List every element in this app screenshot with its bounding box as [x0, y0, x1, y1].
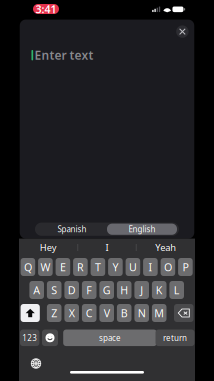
button[interactable]: V	[99, 304, 114, 322]
button[interactable]: I	[78, 239, 136, 255]
button[interactable]: X	[64, 304, 79, 322]
button[interactable]: return	[155, 330, 194, 346]
staticText: X	[69, 306, 75, 320]
button[interactable]: K	[152, 281, 166, 299]
button[interactable]: T	[91, 258, 105, 276]
button[interactable]: M	[152, 304, 166, 322]
button[interactable]: G	[99, 281, 114, 299]
button[interactable]: English	[107, 224, 177, 235]
staticText: H	[120, 283, 128, 297]
button[interactable]: Spanish	[37, 224, 107, 235]
staticText: D	[68, 283, 76, 297]
button[interactable]: H	[117, 281, 131, 299]
button[interactable]: Q	[21, 258, 35, 276]
staticText: Enter text	[34, 47, 93, 63]
staticText: Yeah	[155, 241, 176, 254]
staticText: G	[103, 283, 111, 297]
button[interactable]: space	[63, 330, 157, 346]
staticText: 3:41	[35, 2, 56, 16]
button[interactable]: 123	[20, 330, 39, 346]
staticText: Hey	[40, 241, 57, 254]
button[interactable]: Delete	[174, 304, 194, 322]
staticText: C	[86, 306, 93, 320]
button[interactable]: Shift	[21, 304, 40, 322]
staticText: J	[140, 283, 143, 297]
button[interactable]: R	[73, 258, 88, 276]
staticText: A	[33, 283, 40, 297]
button[interactable]: Emoji	[42, 330, 58, 346]
staticText: K	[156, 283, 163, 297]
staticText: T	[95, 260, 101, 274]
button[interactable]: I	[143, 258, 158, 276]
staticText: M	[154, 306, 164, 320]
staticText: return	[163, 332, 187, 343]
staticText: Spanish	[57, 224, 86, 234]
staticText: B	[121, 306, 128, 320]
staticText: E	[60, 260, 66, 274]
button[interactable]: Hey	[19, 239, 77, 255]
button[interactable]: F	[82, 281, 96, 299]
staticText: R	[77, 260, 84, 274]
button[interactable]: L	[169, 281, 184, 299]
staticText: Y	[112, 260, 118, 274]
button[interactable]: P	[178, 258, 193, 276]
staticText: I	[148, 260, 152, 274]
button[interactable]: N	[134, 304, 149, 322]
staticText: N	[138, 306, 146, 320]
button[interactable]: D	[64, 281, 79, 299]
staticText: space	[99, 332, 121, 343]
button[interactable]: E	[56, 258, 70, 276]
button[interactable]: O	[161, 258, 175, 276]
button[interactable]: Next keyboard	[31, 358, 41, 369]
button[interactable]: Y	[108, 258, 123, 276]
button[interactable]: U	[126, 258, 140, 276]
staticText: S	[51, 283, 57, 297]
staticText: L	[174, 283, 180, 297]
button[interactable]: 3:41	[33, 4, 59, 14]
staticText: P	[182, 260, 188, 274]
button[interactable]: B	[117, 304, 131, 322]
button[interactable]: Z	[47, 304, 61, 322]
staticText: V	[104, 306, 110, 320]
staticText: F	[86, 283, 92, 297]
staticText: English	[128, 224, 155, 234]
staticText: I	[105, 241, 108, 254]
button[interactable]: Enter text	[34, 45, 184, 65]
button[interactable]: Yeah	[137, 239, 195, 255]
staticText: Z	[51, 306, 57, 320]
staticText: U	[129, 260, 137, 274]
button[interactable]: W	[38, 258, 53, 276]
button[interactable]: S	[47, 281, 61, 299]
staticText: W	[40, 260, 50, 274]
staticText: O	[164, 260, 172, 274]
staticText: Q	[24, 260, 32, 274]
button[interactable]: C	[82, 304, 96, 322]
button[interactable]: J	[134, 281, 149, 299]
button[interactable]: A	[29, 281, 44, 299]
button[interactable]: Close	[176, 25, 189, 38]
staticText: 123	[22, 332, 37, 343]
